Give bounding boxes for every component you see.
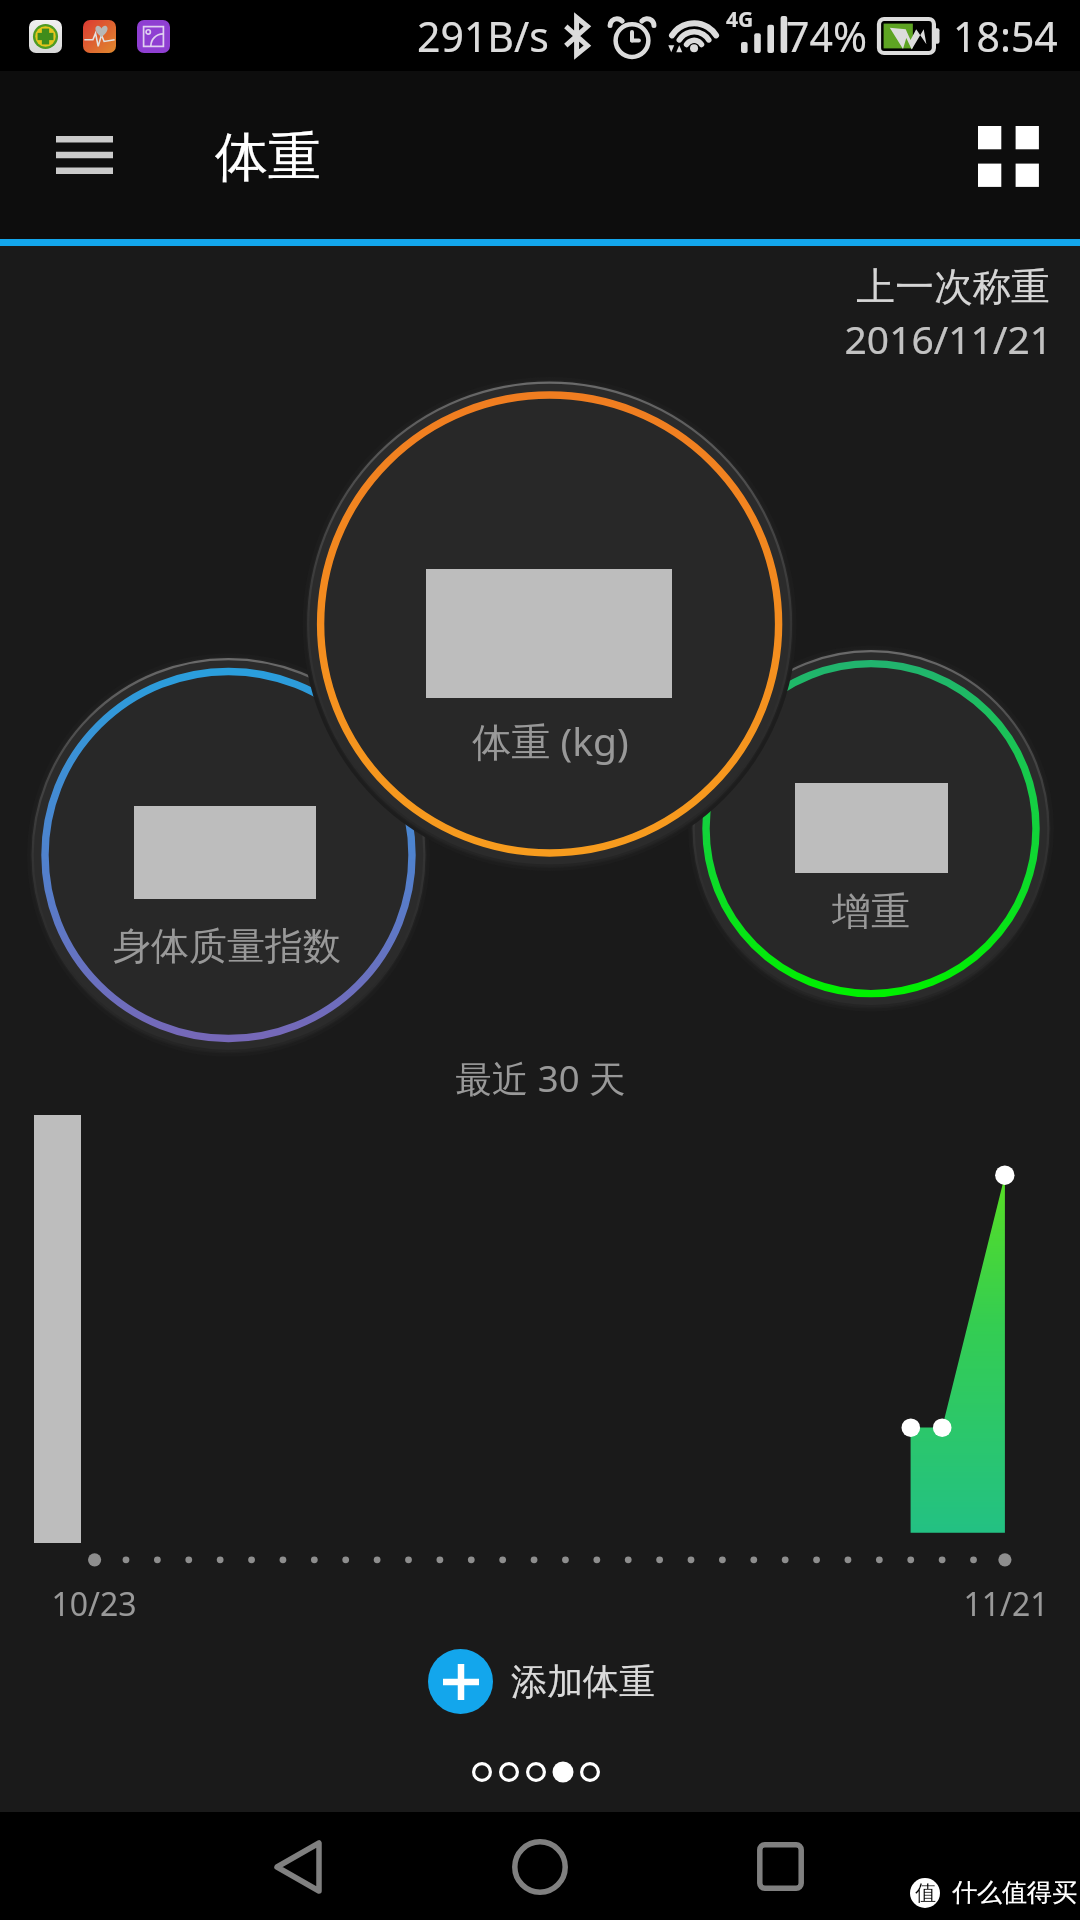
button[interactable]: 体重: [308, 382, 792, 866]
button[interactable]: Page 5: [576, 1749, 603, 1795]
button[interactable]: Grid view: [953, 101, 1063, 211]
button[interactable]: Page 4: [549, 1749, 576, 1795]
button[interactable]: Recent apps: [738, 1824, 822, 1908]
staticText: 体重: [215, 124, 321, 191]
staticText: 74%: [786, 8, 867, 64]
button[interactable]: Page 2: [495, 1749, 522, 1795]
button[interactable]: Page 1: [468, 1749, 495, 1795]
staticText: 体重 (kg): [472, 714, 629, 767]
staticText: 2016/11/21: [844, 312, 1052, 365]
staticText: 什么值得买: [952, 1877, 1077, 1908]
staticText: 291B/s: [417, 8, 549, 64]
button[interactable]: Page 3: [522, 1749, 549, 1795]
staticText: 18:54: [953, 8, 1058, 64]
staticText: 4G: [726, 5, 754, 34]
staticText: 10/23: [51, 1582, 137, 1626]
staticText: 身体质量指数: [113, 922, 341, 970]
staticText: 11/21: [963, 1582, 1049, 1626]
button[interactable]: Home: [498, 1825, 582, 1909]
button[interactable]: Back: [256, 1825, 340, 1909]
staticText: 增重: [832, 887, 910, 936]
button[interactable]: 添加体重: [428, 1647, 728, 1715]
staticText: 添加体重: [511, 1659, 655, 1704]
button[interactable]: 增重: [693, 651, 1049, 1007]
staticText: 上一次称重: [856, 263, 1050, 312]
staticText: 最近 30 天: [455, 1053, 626, 1103]
button[interactable]: Menu: [29, 100, 139, 210]
button[interactable]: 身体质量指数: [32, 659, 425, 1052]
staticText: 值: [915, 1880, 936, 1906]
